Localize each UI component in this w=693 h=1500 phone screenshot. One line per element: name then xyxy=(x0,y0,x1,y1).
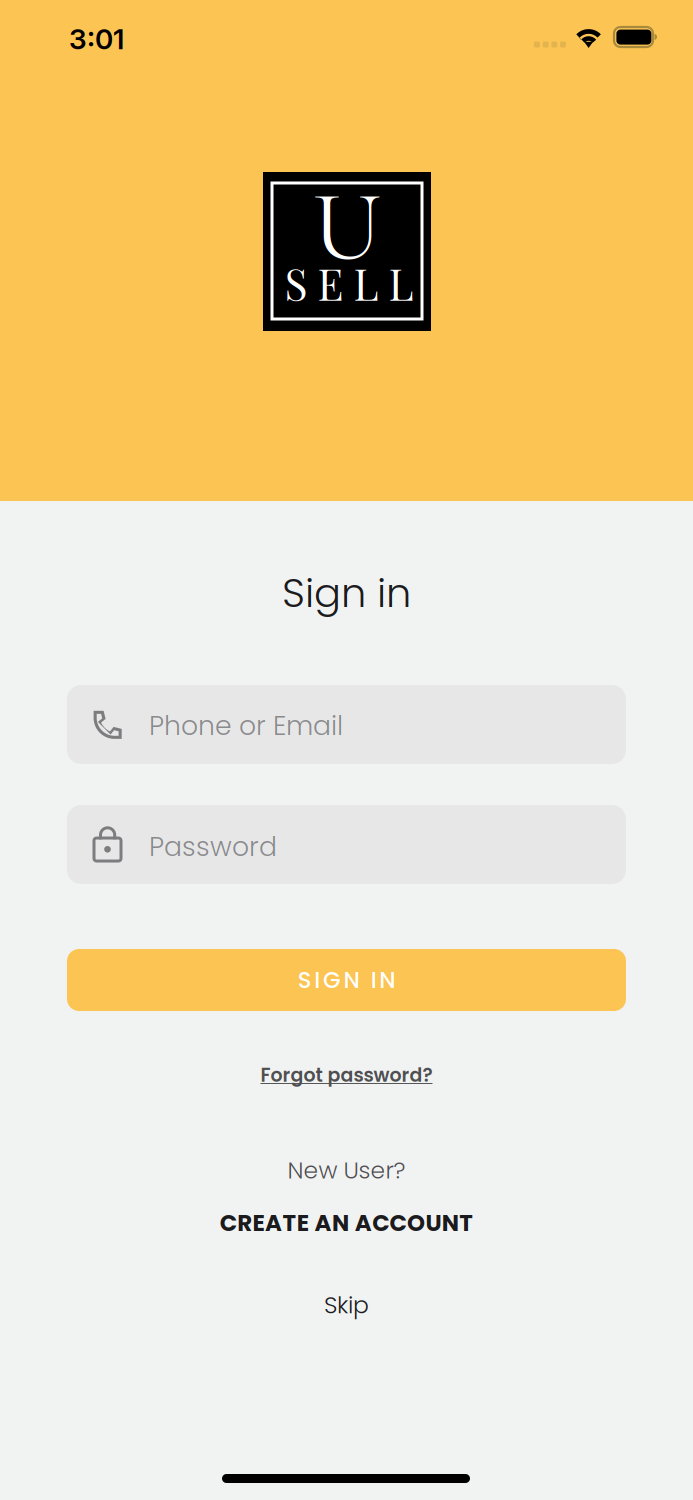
button[interactable]: Skip xyxy=(0,1290,693,1320)
staticText: Skip xyxy=(324,1289,369,1321)
staticText: Sign in xyxy=(282,565,411,621)
staticText: Password xyxy=(149,828,277,865)
staticText: SIGN IN xyxy=(298,964,395,996)
staticText: New User? xyxy=(287,1154,405,1187)
button[interactable]: SIGN IN xyxy=(67,949,626,1011)
staticText: 3:01 xyxy=(69,22,124,56)
staticText: SELL xyxy=(284,255,413,311)
staticText: Phone or Email xyxy=(149,707,343,744)
staticText: Forgot password? xyxy=(260,1062,432,1088)
staticText: U xyxy=(312,167,381,287)
button[interactable]: Phone or Email xyxy=(67,685,626,764)
staticText: CREATE AN ACCOUNT xyxy=(220,1207,473,1239)
button[interactable]: Forgot password? xyxy=(0,1058,693,1092)
button[interactable]: Password xyxy=(67,805,626,884)
button[interactable]: CREATE AN ACCOUNT xyxy=(0,1208,693,1238)
